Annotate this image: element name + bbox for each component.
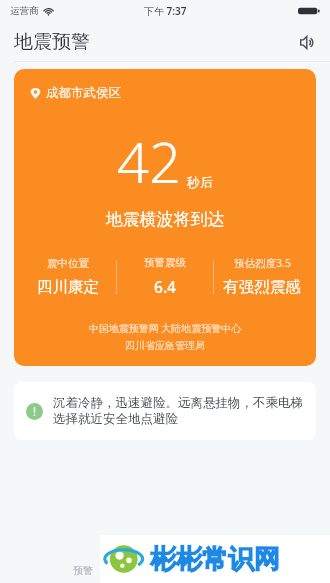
staticText: 四川康定 [37, 277, 99, 297]
staticText: 彬彬常识网 [150, 543, 280, 576]
staticText: 地震预警 [14, 30, 90, 54]
staticText: 成都市武侯区 [46, 85, 121, 101]
staticText: 沉着冷静，迅速避险。远离悬挂物，不乘电梯 [53, 395, 303, 411]
staticText: 运营商 [10, 5, 39, 17]
staticText: 预估烈度3.5 [234, 256, 291, 270]
button[interactable]: 成都市武侯区 [14, 69, 316, 366]
staticText: 地震横波将到达 [14, 209, 316, 230]
staticText: 四川省应急管理局 [14, 339, 316, 352]
button[interactable]: 沉着冷静，迅速避险。远离悬挂物，不乘电梯 [14, 382, 316, 440]
button[interactable]: Sound [288, 26, 320, 58]
button[interactable]: 预警 [0, 549, 110, 583]
staticText: 预警 [73, 564, 93, 577]
staticText: 选择就近安全地点避险 [53, 411, 178, 427]
staticText: 秒后 [187, 174, 213, 190]
staticText: 中国地震预警网 大陆地震预警中心 [14, 321, 316, 335]
staticText: 下午 7:37 [144, 4, 187, 18]
staticText: 42 [117, 123, 181, 199]
staticText: 6.4 [154, 276, 176, 297]
staticText: 震中位置 [47, 257, 89, 270]
staticText: 预警震级 [144, 256, 186, 269]
staticText: 有强烈震感 [223, 277, 301, 297]
